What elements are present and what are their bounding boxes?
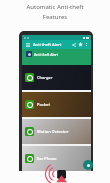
button[interactable]: Ear Phone <box>22 146 91 171</box>
button[interactable]: Menu <box>25 42 30 47</box>
staticText: Anti theft Alert <box>34 52 59 57</box>
button[interactable]: Pocket <box>22 92 91 117</box>
staticText: Motion Detector <box>37 129 69 134</box>
staticText: Pocket <box>37 102 50 107</box>
button[interactable]: Charger <box>22 65 91 90</box>
staticText: Features <box>0 13 110 21</box>
button[interactable]: Motion Detector <box>22 119 91 144</box>
staticText: Automatic Anti-theft <box>0 3 110 11</box>
staticText: Charger <box>37 75 53 80</box>
button[interactable]: Share <box>71 42 76 47</box>
button[interactable]: Add <box>83 160 93 170</box>
staticText: Anti theft Alert <box>33 42 62 47</box>
button[interactable]: Favourite <box>78 42 83 47</box>
button[interactable]: More options <box>84 43 88 47</box>
staticText: Ear Phone <box>37 156 57 161</box>
